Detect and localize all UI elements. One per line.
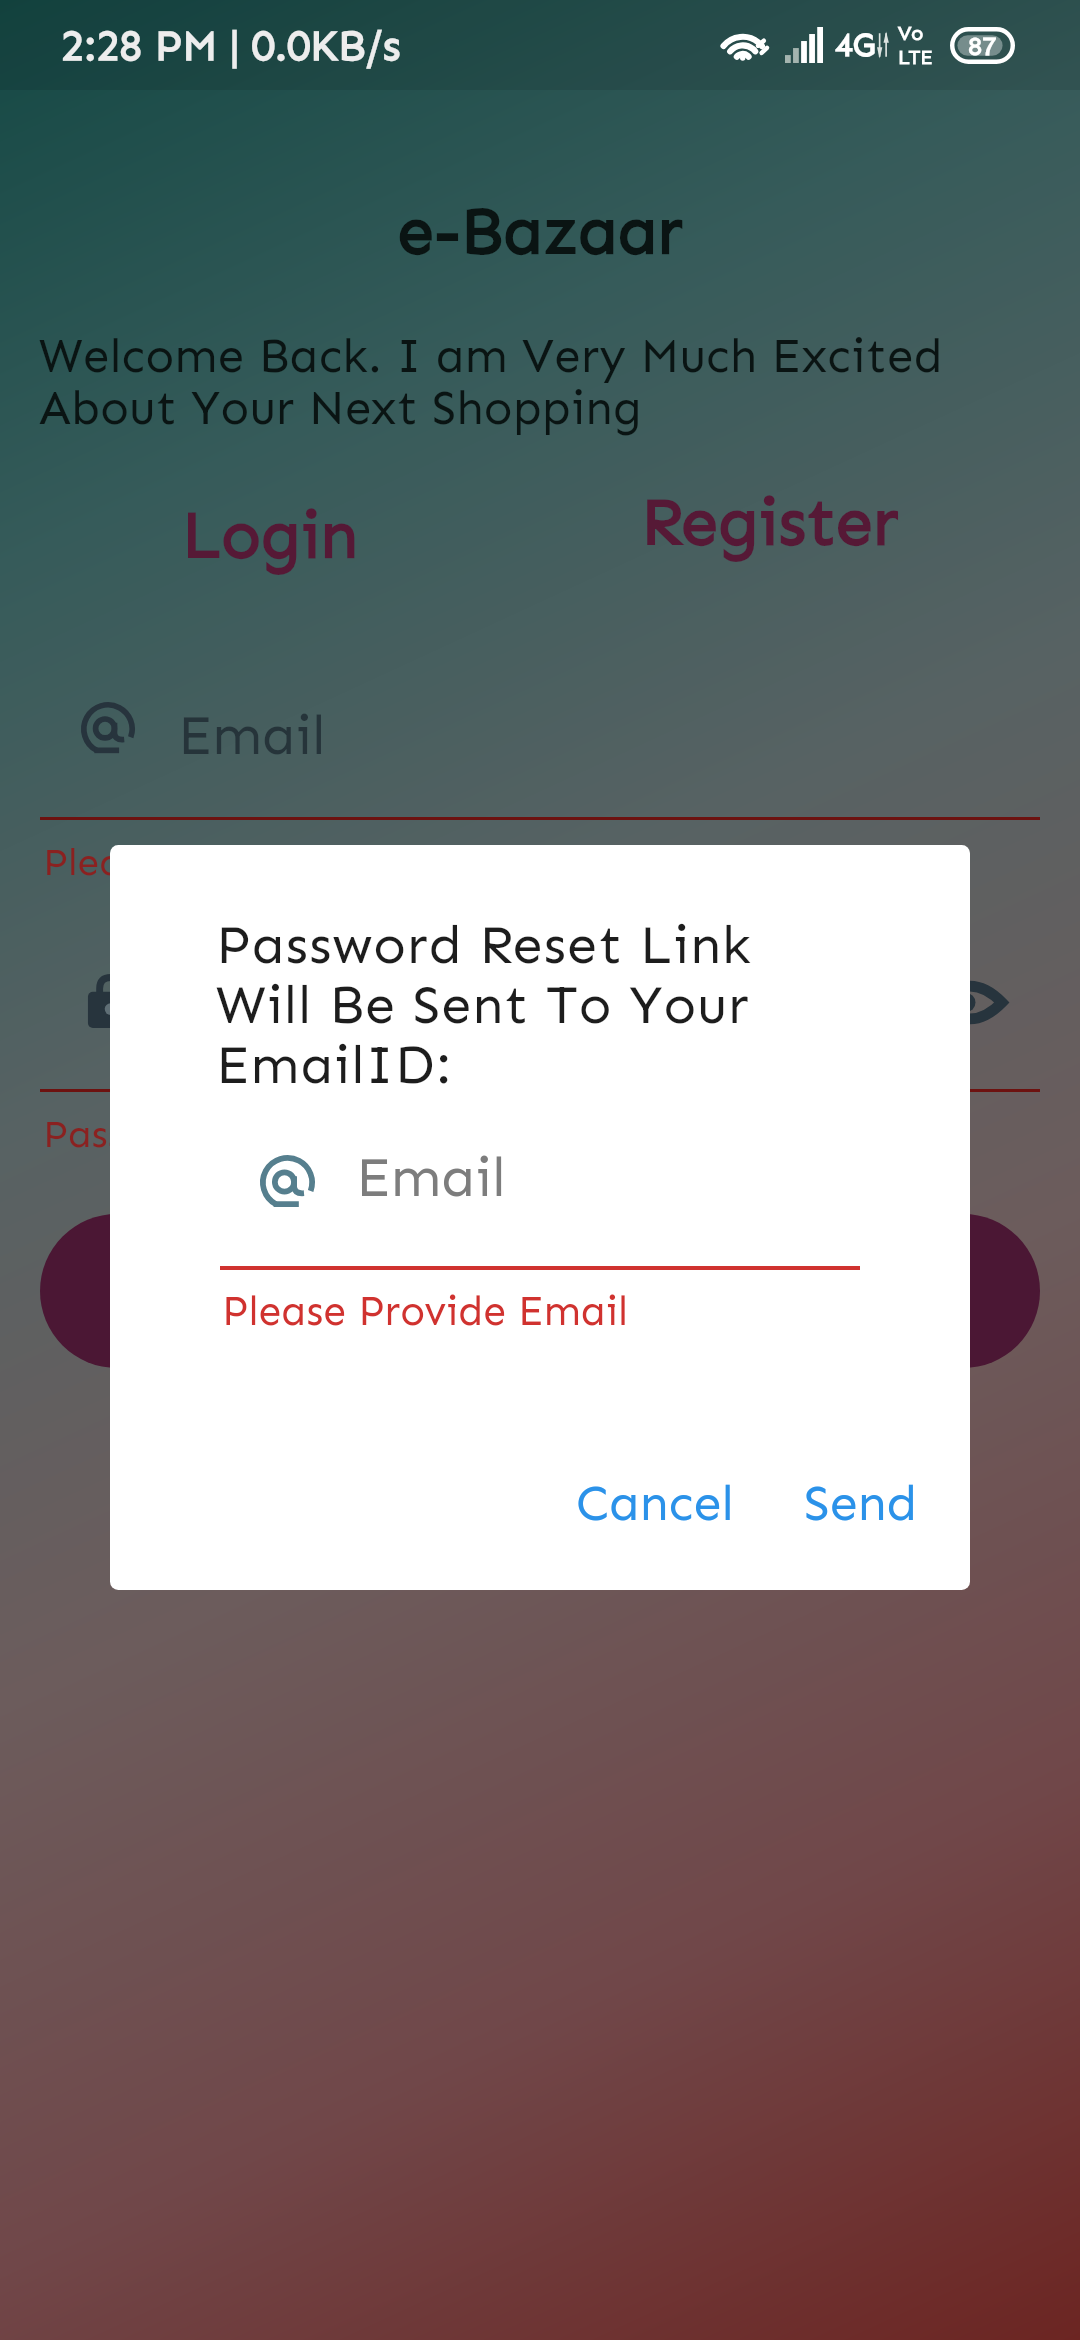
staticText: 4G — [835, 25, 876, 65]
button[interactable]: Login — [173, 496, 366, 590]
staticText: Password — [43, 1111, 215, 1158]
button[interactable]: Register — [632, 481, 907, 575]
staticText: Cancel — [576, 1473, 734, 1534]
staticText: Email — [178, 702, 326, 768]
staticText: Password — [178, 977, 422, 1043]
staticText: Send — [804, 1473, 918, 1534]
staticText: Login — [470, 1260, 611, 1323]
staticText: Password Reset Link Will Be Sent To Your… — [216, 912, 785, 1097]
staticText: Vo — [898, 21, 924, 45]
button[interactable]: Send — [789, 1473, 932, 1556]
staticText: Welcome Back. I am Very Much Excited Abo… — [39, 328, 1058, 436]
staticText: Register — [641, 481, 899, 561]
staticText: Please Provide Email — [222, 1287, 629, 1336]
staticText: 2:28 PM | 0.0KB/s — [61, 20, 401, 71]
staticText: e-Bazaar — [0, 192, 1080, 271]
button[interactable]: Cancel — [564, 1473, 746, 1556]
staticText: LTE — [898, 45, 933, 69]
staticText: Login — [182, 496, 358, 575]
staticText: 87 — [968, 30, 997, 62]
button[interactable]: Login — [40, 1214, 1040, 1368]
staticText: Please Provide Email — [43, 839, 428, 886]
staticText: Email — [356, 1144, 506, 1211]
button[interactable]: Show password — [924, 969, 1015, 1035]
